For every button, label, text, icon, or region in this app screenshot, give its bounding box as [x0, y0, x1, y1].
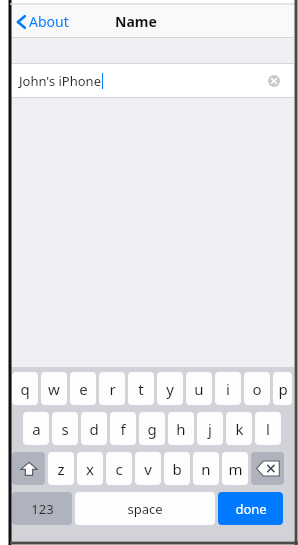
staticText: c — [115, 459, 123, 479]
button[interactable]: p — [273, 372, 292, 405]
button[interactable]: Shift — [12, 452, 45, 485]
button[interactable]: s — [52, 412, 78, 445]
button[interactable]: u — [186, 372, 212, 405]
staticText: b — [172, 459, 182, 479]
staticText: 123 — [31, 500, 54, 518]
button[interactable]: r — [99, 372, 125, 405]
button[interactable]: 123 — [12, 492, 72, 525]
staticText: g — [147, 419, 157, 439]
button[interactable]: n — [193, 452, 219, 485]
staticText: h — [176, 419, 186, 439]
button[interactable]: g — [139, 412, 165, 445]
staticText: u — [194, 379, 204, 399]
staticText: About — [29, 12, 69, 31]
staticText: v — [144, 459, 152, 479]
button[interactable]: k — [226, 412, 252, 445]
button[interactable]: t — [128, 372, 154, 405]
button[interactable]: j — [197, 412, 223, 445]
staticText: y — [166, 379, 174, 399]
button[interactable]: i — [215, 372, 241, 405]
staticText: f — [120, 419, 126, 439]
button[interactable]: Backspace — [251, 452, 284, 485]
staticText: x — [86, 459, 94, 479]
button[interactable]: b — [164, 452, 190, 485]
staticText: q — [20, 379, 30, 399]
staticText: m — [228, 459, 243, 479]
staticText: l — [266, 419, 270, 439]
button[interactable]: John's iPhone — [10, 64, 294, 97]
button[interactable]: y — [157, 372, 183, 405]
button[interactable]: z — [48, 452, 74, 485]
staticText: s — [61, 419, 69, 439]
staticText: a — [32, 419, 41, 439]
staticText: w — [48, 379, 60, 399]
button[interactable]: done — [218, 492, 283, 525]
button[interactable]: m — [222, 452, 248, 485]
staticText: z — [57, 459, 65, 479]
staticText: John's iPhone — [19, 72, 101, 90]
staticText: Name — [115, 12, 157, 31]
button[interactable]: o — [244, 372, 270, 405]
button[interactable]: f — [110, 412, 136, 445]
button[interactable]: a — [23, 412, 49, 445]
button[interactable]: x — [77, 452, 103, 485]
staticText: d — [89, 419, 99, 439]
button[interactable]: h — [168, 412, 194, 445]
staticText: n — [201, 459, 211, 479]
button[interactable]: d — [81, 412, 107, 445]
staticText: r — [109, 379, 116, 399]
staticText: space — [127, 500, 163, 518]
button[interactable]: Clear text — [268, 75, 280, 87]
button[interactable]: space — [75, 492, 215, 525]
button[interactable]: w — [41, 372, 67, 405]
button[interactable]: e — [70, 372, 96, 405]
button[interactable]: v — [135, 452, 161, 485]
staticText: k — [235, 419, 244, 439]
staticText: e — [79, 379, 88, 399]
staticText: t — [138, 379, 144, 399]
button[interactable]: q — [12, 372, 38, 405]
button[interactable]: l — [255, 412, 281, 445]
staticText: p — [278, 379, 288, 399]
staticText: o — [252, 379, 262, 399]
button[interactable]: c — [106, 452, 132, 485]
staticText: i — [226, 379, 230, 399]
staticText: done — [235, 500, 267, 518]
button[interactable]: About — [16, 12, 69, 31]
staticText: j — [208, 419, 212, 439]
